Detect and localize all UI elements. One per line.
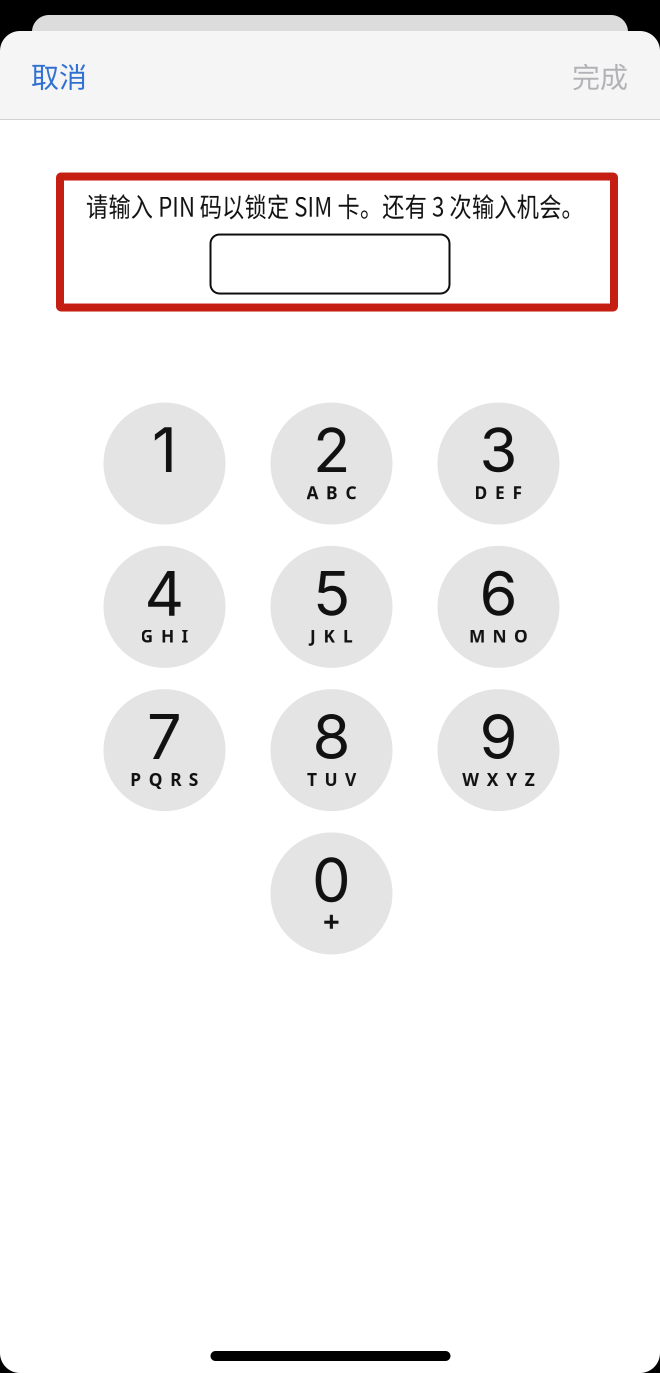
staticText: TUV xyxy=(307,768,356,791)
staticText: DEF xyxy=(474,481,522,504)
button[interactable]: 5 xyxy=(270,546,392,668)
staticText: 完成 xyxy=(572,55,628,96)
button[interactable]: 6 xyxy=(437,546,559,668)
staticText: 7 xyxy=(147,699,182,774)
staticText: PQRS xyxy=(130,768,199,791)
staticText: 8 xyxy=(312,699,350,774)
staticText: ABC xyxy=(306,481,356,504)
button[interactable]: 1 xyxy=(103,403,225,525)
staticText: JKL xyxy=(310,624,353,647)
staticText: GHI xyxy=(140,624,188,647)
button[interactable]: 0 xyxy=(270,832,392,954)
button[interactable]: 完成 xyxy=(540,31,660,120)
staticText: 请输入 PIN 码以锁定 SIM 卡。还有 3 次输入机会。 xyxy=(35,186,635,224)
button[interactable]: PIN 码输入框 xyxy=(210,234,449,293)
staticText: 3 xyxy=(479,413,517,487)
button[interactable]: 4 xyxy=(103,546,225,668)
staticText: 0 xyxy=(312,843,351,917)
button[interactable]: 取消 xyxy=(0,31,118,120)
button[interactable]: 8 xyxy=(270,689,392,811)
staticText: MNO xyxy=(469,624,528,647)
staticText: 2 xyxy=(313,413,350,487)
staticText: WXYZ xyxy=(462,768,535,791)
staticText: 6 xyxy=(479,556,517,630)
staticText: 9 xyxy=(479,699,517,774)
staticText: 5 xyxy=(313,556,350,630)
staticText: 4 xyxy=(144,556,184,630)
staticText: 1 xyxy=(152,413,177,487)
staticText: 取消 xyxy=(31,55,87,96)
staticText: + xyxy=(323,901,340,940)
button[interactable]: 3 xyxy=(437,403,559,525)
button[interactable]: 9 xyxy=(437,689,559,811)
button[interactable]: 2 xyxy=(270,403,392,525)
button[interactable]: 7 xyxy=(103,689,225,811)
